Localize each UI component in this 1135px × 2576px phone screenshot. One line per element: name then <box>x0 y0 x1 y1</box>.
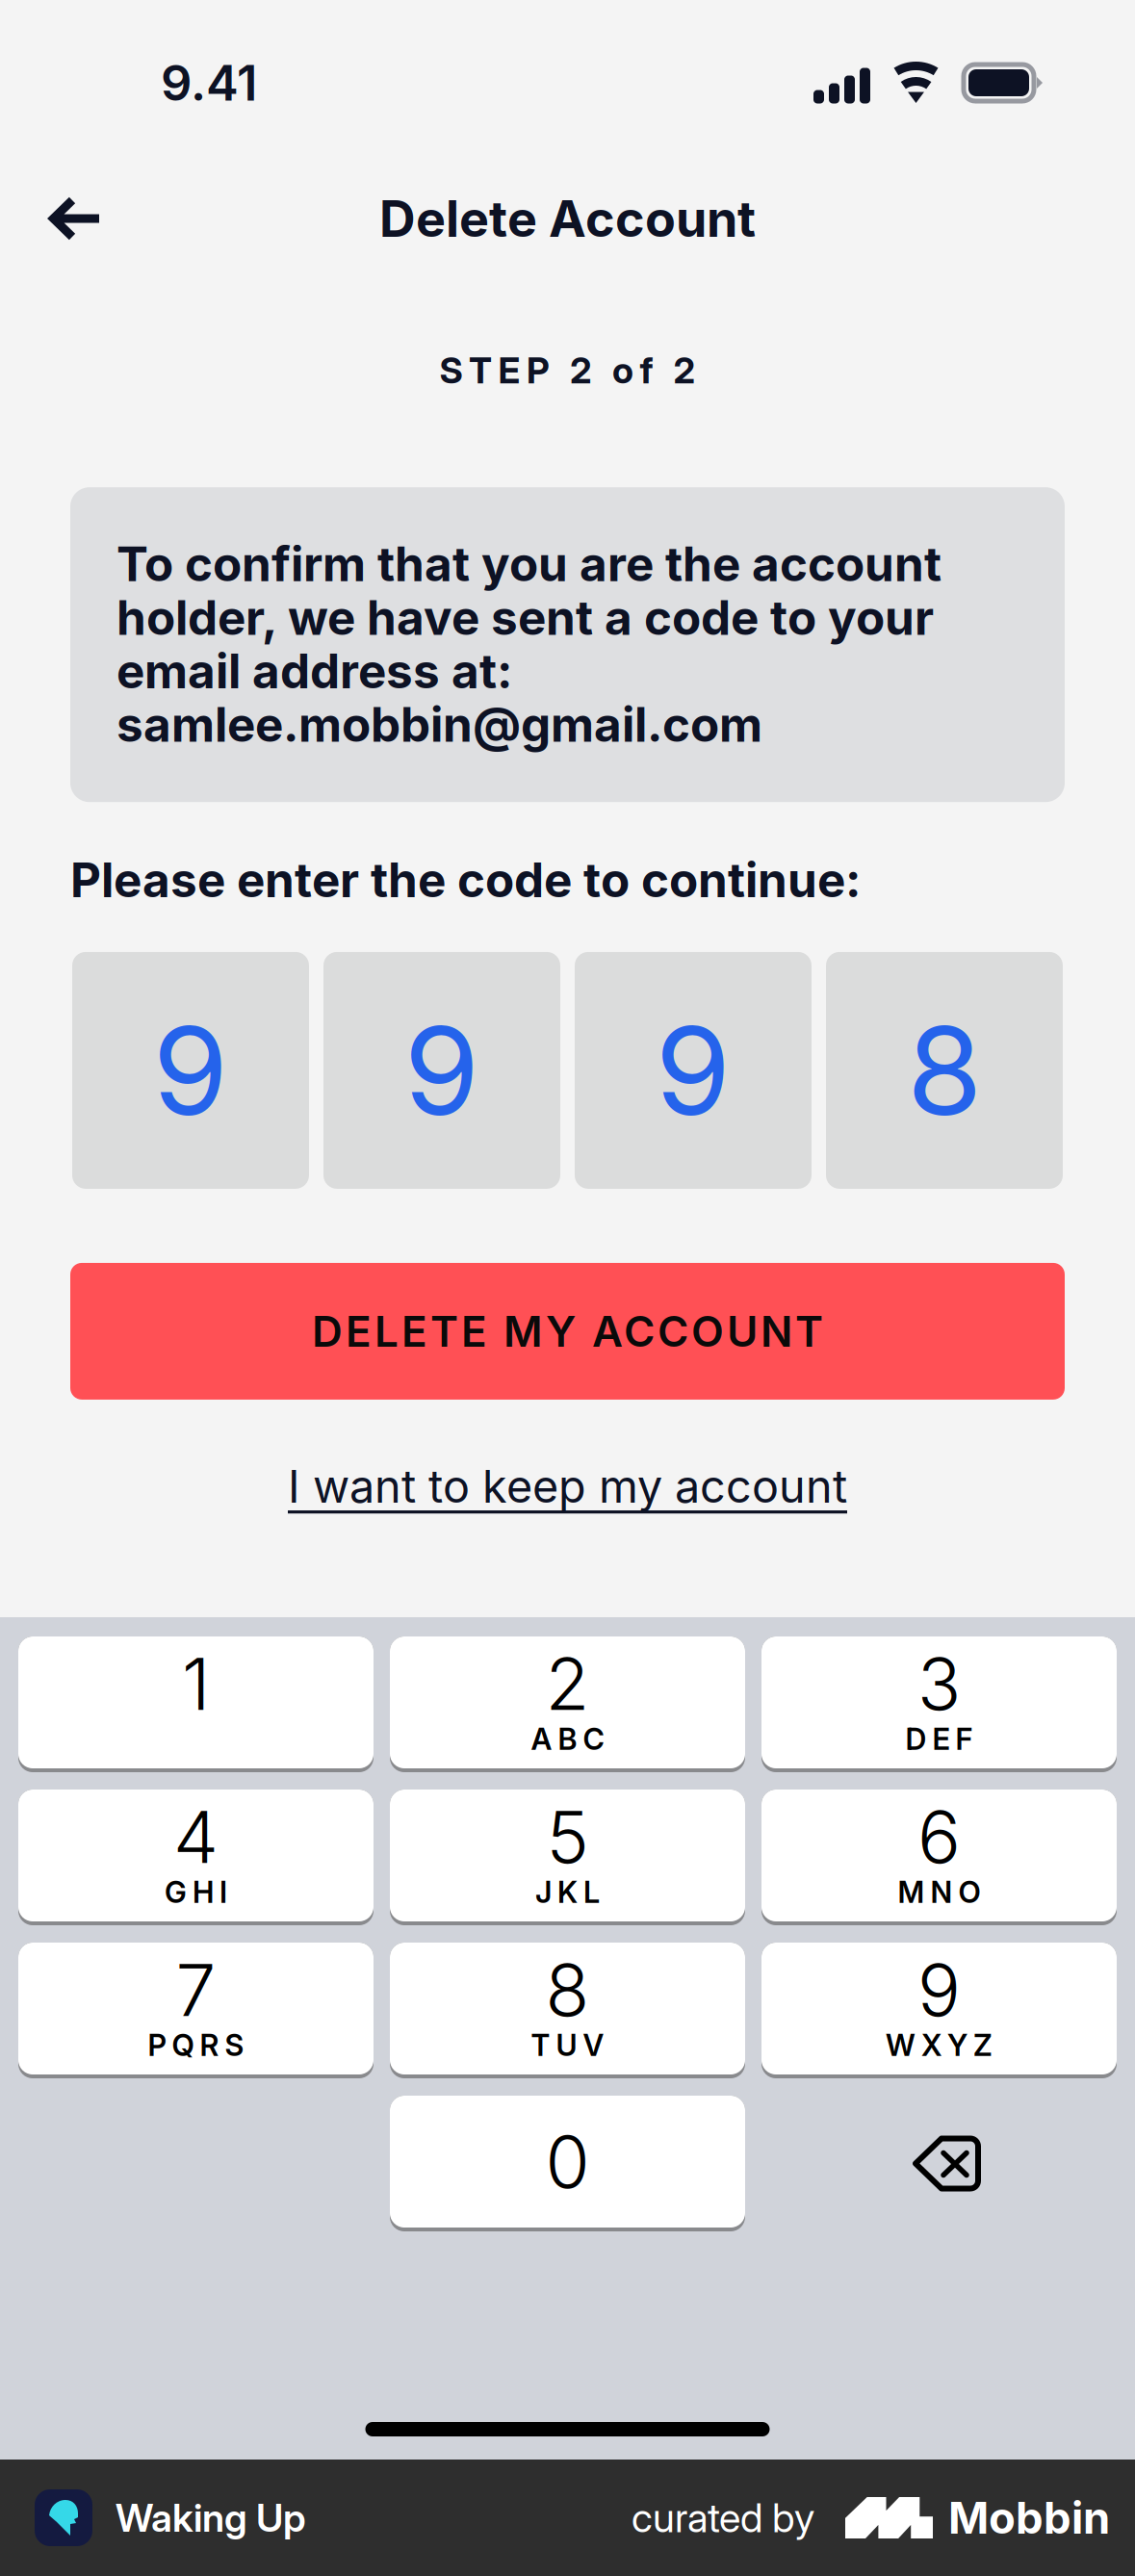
button[interactable]: 3 <box>761 1636 1117 1772</box>
staticText: 9 <box>153 997 229 1144</box>
staticText: ABC <box>531 1721 604 1757</box>
staticText: GHI <box>165 1874 227 1910</box>
staticText: 9 <box>917 1946 961 2033</box>
button[interactable]: 8 <box>390 1943 745 2078</box>
button[interactable]: 6 <box>761 1790 1117 1925</box>
staticText: DEF <box>905 1721 973 1757</box>
staticText: 3 <box>917 1640 961 1727</box>
staticText: 9 <box>404 997 480 1144</box>
staticText: JKL <box>535 1874 600 1910</box>
button[interactable]: 4 <box>18 1790 374 1925</box>
button[interactable]: 0 <box>390 2096 745 2231</box>
staticText: 8 <box>545 1946 590 2033</box>
staticText: curated by <box>632 2494 814 2542</box>
button[interactable]: 7 <box>18 1943 374 2078</box>
staticText: 0 <box>545 2118 590 2205</box>
button[interactable]: 9 <box>323 952 560 1189</box>
staticText: 5 <box>546 1793 589 1880</box>
button[interactable]: 9 <box>575 952 812 1189</box>
button[interactable]: 5 <box>390 1790 745 1925</box>
staticText: DELETE MY ACCOUNT <box>312 1306 823 1357</box>
button[interactable]: Back <box>22 172 128 265</box>
button[interactable]: 1 <box>18 1636 374 1772</box>
button[interactable]: Delete <box>761 2096 1117 2231</box>
staticText: 7 <box>176 1946 216 2033</box>
staticText: 9.41 <box>161 53 257 112</box>
staticText: 9 <box>655 997 731 1144</box>
staticText: 6 <box>917 1793 961 1880</box>
button[interactable]: 9 <box>761 1943 1117 2078</box>
staticText: 4 <box>173 1793 219 1880</box>
staticText: STEP 2 of 2 <box>439 348 696 392</box>
staticText: WXYZ <box>886 2027 993 2063</box>
staticText: MNO <box>898 1874 980 1910</box>
staticText: Delete Account <box>379 188 756 249</box>
staticText: Please enter the code to continue: <box>70 851 861 909</box>
staticText: PQRS <box>148 2027 244 2063</box>
staticText: Waking Up <box>116 2494 306 2541</box>
staticText: 2 <box>545 1640 590 1727</box>
button[interactable]: DELETE MY ACCOUNT <box>0 1263 1135 1400</box>
button[interactable]: 8 <box>826 952 1063 1189</box>
button[interactable]: 2 <box>390 1636 745 1772</box>
staticText: I want to keep my account <box>288 1459 847 1514</box>
staticText: Mobbin <box>948 2491 1110 2544</box>
staticText: 8 <box>907 997 982 1144</box>
staticText: 1 <box>182 1640 210 1727</box>
button[interactable]: I want to keep my account <box>269 1450 866 1523</box>
button[interactable]: 9 <box>72 952 309 1189</box>
staticText: To confirm that you are the account hold… <box>116 537 942 751</box>
staticText: TUV <box>531 2027 604 2063</box>
